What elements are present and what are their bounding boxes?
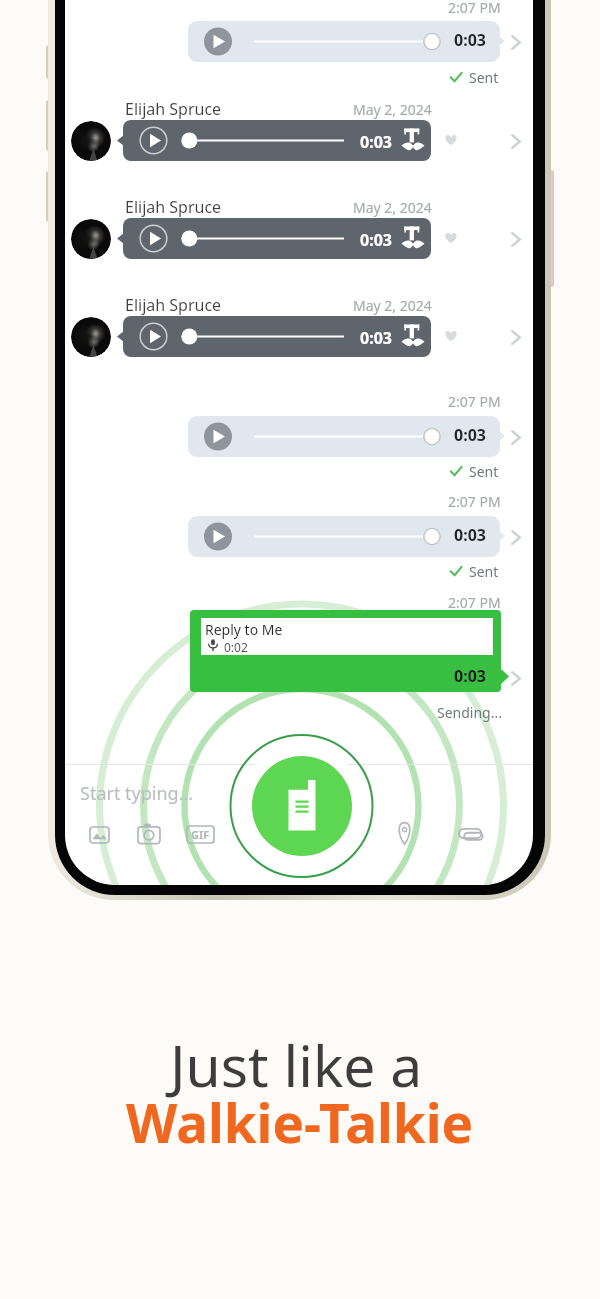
staticText: Elijah Spruce: [125, 196, 222, 218]
button[interactable]: Open message: [506, 327, 526, 347]
button[interactable]: Open message: [506, 668, 526, 688]
button[interactable]: Open message: [506, 427, 526, 447]
staticText: 0:03: [454, 29, 486, 51]
staticText: Elijah Spruce: [125, 98, 222, 120]
staticText: 0:03: [360, 327, 392, 349]
staticText: Sent: [469, 562, 499, 581]
staticText: Just like a: [170, 1026, 423, 1104]
staticText: Start typing...: [80, 781, 194, 806]
staticText: 2:07 PM: [448, 593, 501, 612]
button[interactable]: Reply to Me: [190, 610, 501, 692]
staticText: Reply to Me: [205, 620, 283, 639]
staticText: May 2, 2024: [353, 198, 432, 217]
staticText: Sending...: [437, 703, 502, 722]
button[interactable]: 0:03: [188, 416, 500, 457]
staticText: Elijah Spruce: [125, 294, 222, 316]
button[interactable]: 0:03: [123, 316, 431, 357]
staticText: 0:03: [360, 131, 392, 153]
button[interactable]: Elijah Spruce avatar: [71, 121, 111, 161]
staticText: May 2, 2024: [353, 100, 432, 119]
button[interactable]: Push to talk: [252, 756, 352, 856]
button[interactable]: 0:03: [188, 21, 500, 62]
button[interactable]: Open message: [506, 131, 526, 151]
staticText: 0:03: [454, 424, 486, 446]
button[interactable]: 0:03: [188, 516, 500, 557]
staticText: 0:02: [224, 639, 248, 655]
staticText: Sent: [469, 68, 499, 87]
button[interactable]: Open message: [506, 229, 526, 249]
staticText: GIF: [191, 827, 210, 842]
staticText: Sent: [469, 462, 499, 481]
staticText: 2:07 PM: [448, 0, 501, 17]
staticText: 0:03: [454, 665, 486, 687]
staticText: May 2, 2024: [353, 296, 432, 315]
button[interactable]: Like: [441, 228, 461, 248]
staticText: Walkie-Talkie: [126, 1086, 474, 1158]
button[interactable]: Location: [397, 822, 412, 845]
button[interactable]: Elijah Spruce avatar: [71, 317, 111, 357]
button[interactable]: Photo: [89, 826, 110, 844]
button[interactable]: Open message: [506, 32, 526, 52]
staticText: 2:07 PM: [448, 492, 501, 511]
button[interactable]: GIF: [186, 825, 215, 844]
button[interactable]: Like: [441, 130, 461, 150]
button[interactable]: 0:03: [123, 120, 431, 161]
staticText: 0:03: [454, 524, 486, 546]
staticText: 0:03: [360, 229, 392, 251]
staticText: 2:07 PM: [448, 392, 501, 411]
button[interactable]: Like: [441, 326, 461, 346]
button[interactable]: Open message: [506, 527, 526, 547]
button[interactable]: Elijah Spruce avatar: [71, 219, 111, 259]
button[interactable]: Attach: [458, 827, 486, 845]
button[interactable]: 0:03: [123, 218, 431, 259]
button[interactable]: Camera: [137, 823, 161, 844]
